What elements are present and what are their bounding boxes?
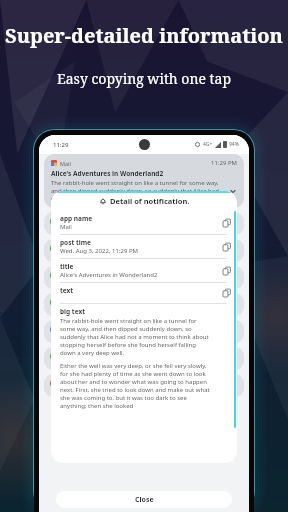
staticText: 11:29 PM: [211, 159, 237, 167]
staticText: Detail of notification.: [110, 196, 190, 206]
button[interactable]: title: [60, 259, 235, 282]
staticText: PM: [230, 324, 238, 331]
button[interactable]: Close: [56, 491, 232, 508]
staticText: PM: [230, 243, 238, 250]
staticText: Bob: [63, 243, 75, 251]
staticText: The rabbit-hole went straight on like a …: [51, 179, 226, 203]
staticText: Mike: [63, 270, 78, 278]
staticText: Close: [135, 495, 154, 505]
staticText: I like it: [63, 224, 81, 231]
button[interactable]: Bob: [44, 239, 244, 262]
staticText: Mom: [63, 324, 79, 332]
button[interactable]: Mail: [44, 154, 244, 208]
staticText: post time: [60, 238, 91, 247]
button[interactable]: Ann: [44, 347, 244, 370]
staticText: Are you there: [63, 305, 98, 312]
staticText: Super-detailed information: [5, 22, 283, 49]
staticText: 11:29: [53, 141, 69, 149]
staticText: free today?: [63, 251, 92, 258]
staticText: Alice's Adventures in Wonderland2: [51, 169, 164, 178]
button[interactable]: Mike: [44, 293, 244, 316]
staticText: Easy copying with one tap: [57, 69, 231, 88]
staticText: Tou: [63, 359, 73, 366]
button[interactable]: Mike: [44, 266, 244, 289]
button[interactable]: Mom: [44, 320, 244, 343]
staticText: Bob: [63, 216, 75, 224]
button[interactable]: app name: [60, 211, 235, 234]
staticText: Alice's Adventures in Wonderland2: [60, 271, 158, 279]
button[interactable]: Hi :): [44, 374, 244, 397]
staticText: PM: [230, 378, 238, 385]
staticText: Mike: hello: [63, 278, 92, 285]
staticText: Mike: [63, 297, 78, 305]
staticText: 4G+: [203, 141, 213, 148]
staticText: PM: [230, 270, 238, 277]
staticText: Mail: [60, 223, 72, 231]
staticText: text: [60, 286, 74, 295]
staticText: Ann: [63, 351, 75, 359]
staticText: title: [60, 262, 74, 271]
staticText: Hi :): [63, 378, 75, 386]
staticText: app name: [60, 214, 93, 223]
staticText: PM: [230, 216, 238, 223]
button[interactable]: Copy text: [219, 285, 235, 301]
staticText: Mail: [60, 160, 71, 167]
staticText: called: [63, 332, 79, 339]
staticText: 94%: [229, 141, 239, 148]
staticText: Hi :): [63, 386, 74, 393]
button[interactable]: Bob: [44, 212, 244, 235]
staticText: PM: [230, 297, 238, 304]
button[interactable]: Expand notification: [229, 187, 237, 195]
staticText: Either the well was very deep, or she fe…: [60, 362, 213, 410]
button[interactable]: text: [60, 283, 235, 303]
button[interactable]: Copy app name: [219, 215, 235, 231]
staticText: The rabbit-hole went straight on like a …: [60, 317, 213, 357]
staticText: Wed, Aug 3, 2022, 11:29 PM: [60, 247, 138, 255]
staticText: PM: [230, 351, 238, 358]
button[interactable]: Copy title: [219, 263, 235, 279]
button[interactable]: Copy post time: [219, 239, 235, 255]
button[interactable]: post time: [60, 235, 235, 258]
staticText: big text: [60, 307, 85, 316]
